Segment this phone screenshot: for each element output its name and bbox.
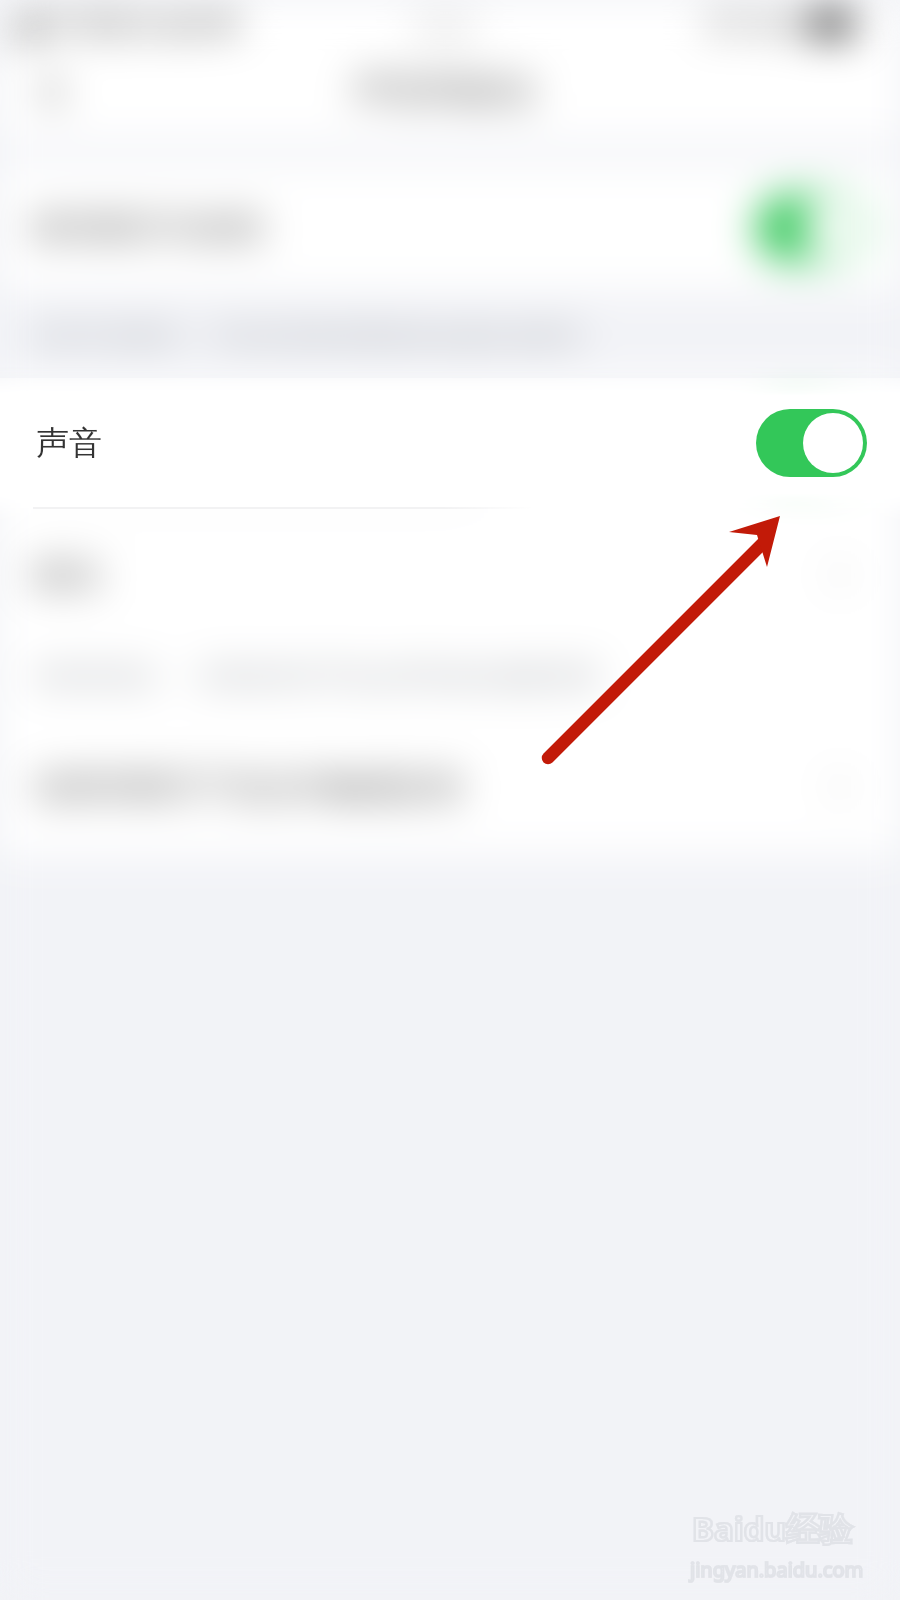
button[interactable]: 振动 [33, 520, 854, 630]
button[interactable]: 振动 [33, 520, 854, 630]
staticText: 86% [757, 8, 803, 39]
button[interactable]: Toggle sound [756, 194, 867, 262]
staticText: 声音和振动 [354, 68, 534, 113]
staticText: 86% [757, 8, 803, 39]
button[interactable]: 声音 [36, 378, 867, 508]
staticText: 静音模式与勿扰 [33, 207, 264, 249]
button[interactable]: 声音 [36, 378, 867, 508]
staticText: 振动 [33, 554, 99, 596]
button[interactable]: 在静音模式下也允许触感反馈 [33, 732, 854, 842]
staticText: 声音 [36, 422, 102, 464]
button[interactable]: Toggle sound [756, 194, 867, 262]
button[interactable]: 在静音模式下也允许触感反馈 [33, 732, 854, 842]
staticText: 声音和振动 [354, 68, 534, 113]
button[interactable]: Toggle sound [756, 409, 867, 477]
button[interactable]: Toggle sound [756, 409, 867, 477]
staticText: 在静音模式下也允许触感反馈 [33, 766, 462, 808]
other: Pointer arrow to sound switch [0, 0, 900, 1600]
staticText: jingyan.baidu.com [690, 1556, 864, 1583]
button[interactable]: 静音模式与勿扰 [33, 165, 867, 290]
button[interactable]: 静音模式与勿扰 [33, 165, 867, 290]
staticText: 静音模式与勿扰 [33, 207, 264, 249]
staticText: 振动 [33, 554, 99, 596]
staticText: 声音 [36, 422, 102, 464]
staticText: Baidu经验 [692, 1506, 852, 1551]
staticText: 在静音模式下也允许触感反馈 [33, 766, 462, 808]
